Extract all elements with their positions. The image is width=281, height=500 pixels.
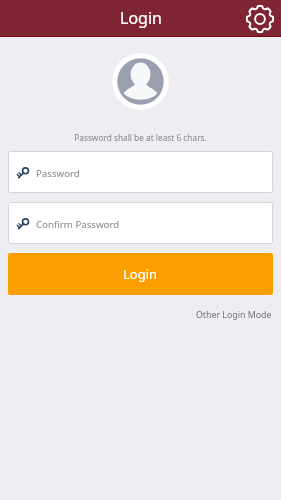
staticText: Other Login Mode (196, 309, 272, 321)
button[interactable]: Confirm Password (8, 202, 273, 244)
staticText: Login (120, 7, 162, 29)
staticText: Password shall be at least 6 chars. (0, 132, 281, 143)
button[interactable]: Password (8, 151, 273, 193)
staticText: Login (123, 265, 158, 283)
button[interactable]: Other Login Mode (193, 306, 275, 322)
staticText: Password (36, 167, 80, 180)
button[interactable]: Login (8, 253, 273, 295)
button[interactable]: Settings (244, 1, 278, 35)
staticText: Confirm Password (36, 218, 120, 231)
